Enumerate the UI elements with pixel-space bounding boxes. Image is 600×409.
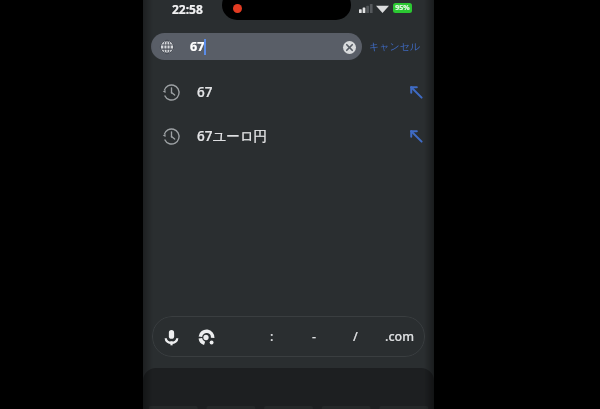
staticText: 95% [395, 3, 410, 13]
button[interactable]: Google Lens [197, 328, 215, 346]
button[interactable]: 67ユーロ円 [143, 114, 434, 158]
staticText: 22:58 [172, 1, 203, 17]
staticText: / [353, 328, 358, 345]
staticText: .com [385, 328, 415, 345]
staticText: 67 [190, 38, 205, 55]
button[interactable]: Voice search [162, 328, 180, 346]
button[interactable]: 67 [151, 33, 362, 60]
staticText: 67ユーロ円 [197, 127, 268, 145]
button[interactable]: Clear [342, 40, 356, 54]
button[interactable]: - [307, 323, 322, 350]
staticText: : [270, 328, 274, 345]
button[interactable]: .com [380, 323, 420, 350]
button[interactable]: : [265, 323, 279, 350]
button[interactable]: キャンセル [362, 33, 423, 60]
staticText: - [312, 328, 317, 345]
button[interactable]: / [348, 323, 363, 350]
button[interactable]: Use suggestion [408, 84, 424, 100]
staticText: 67 [197, 83, 213, 101]
button[interactable]: Use suggestion [408, 128, 424, 144]
button[interactable]: 67 [143, 70, 434, 114]
staticText: キャンセル [369, 40, 421, 53]
